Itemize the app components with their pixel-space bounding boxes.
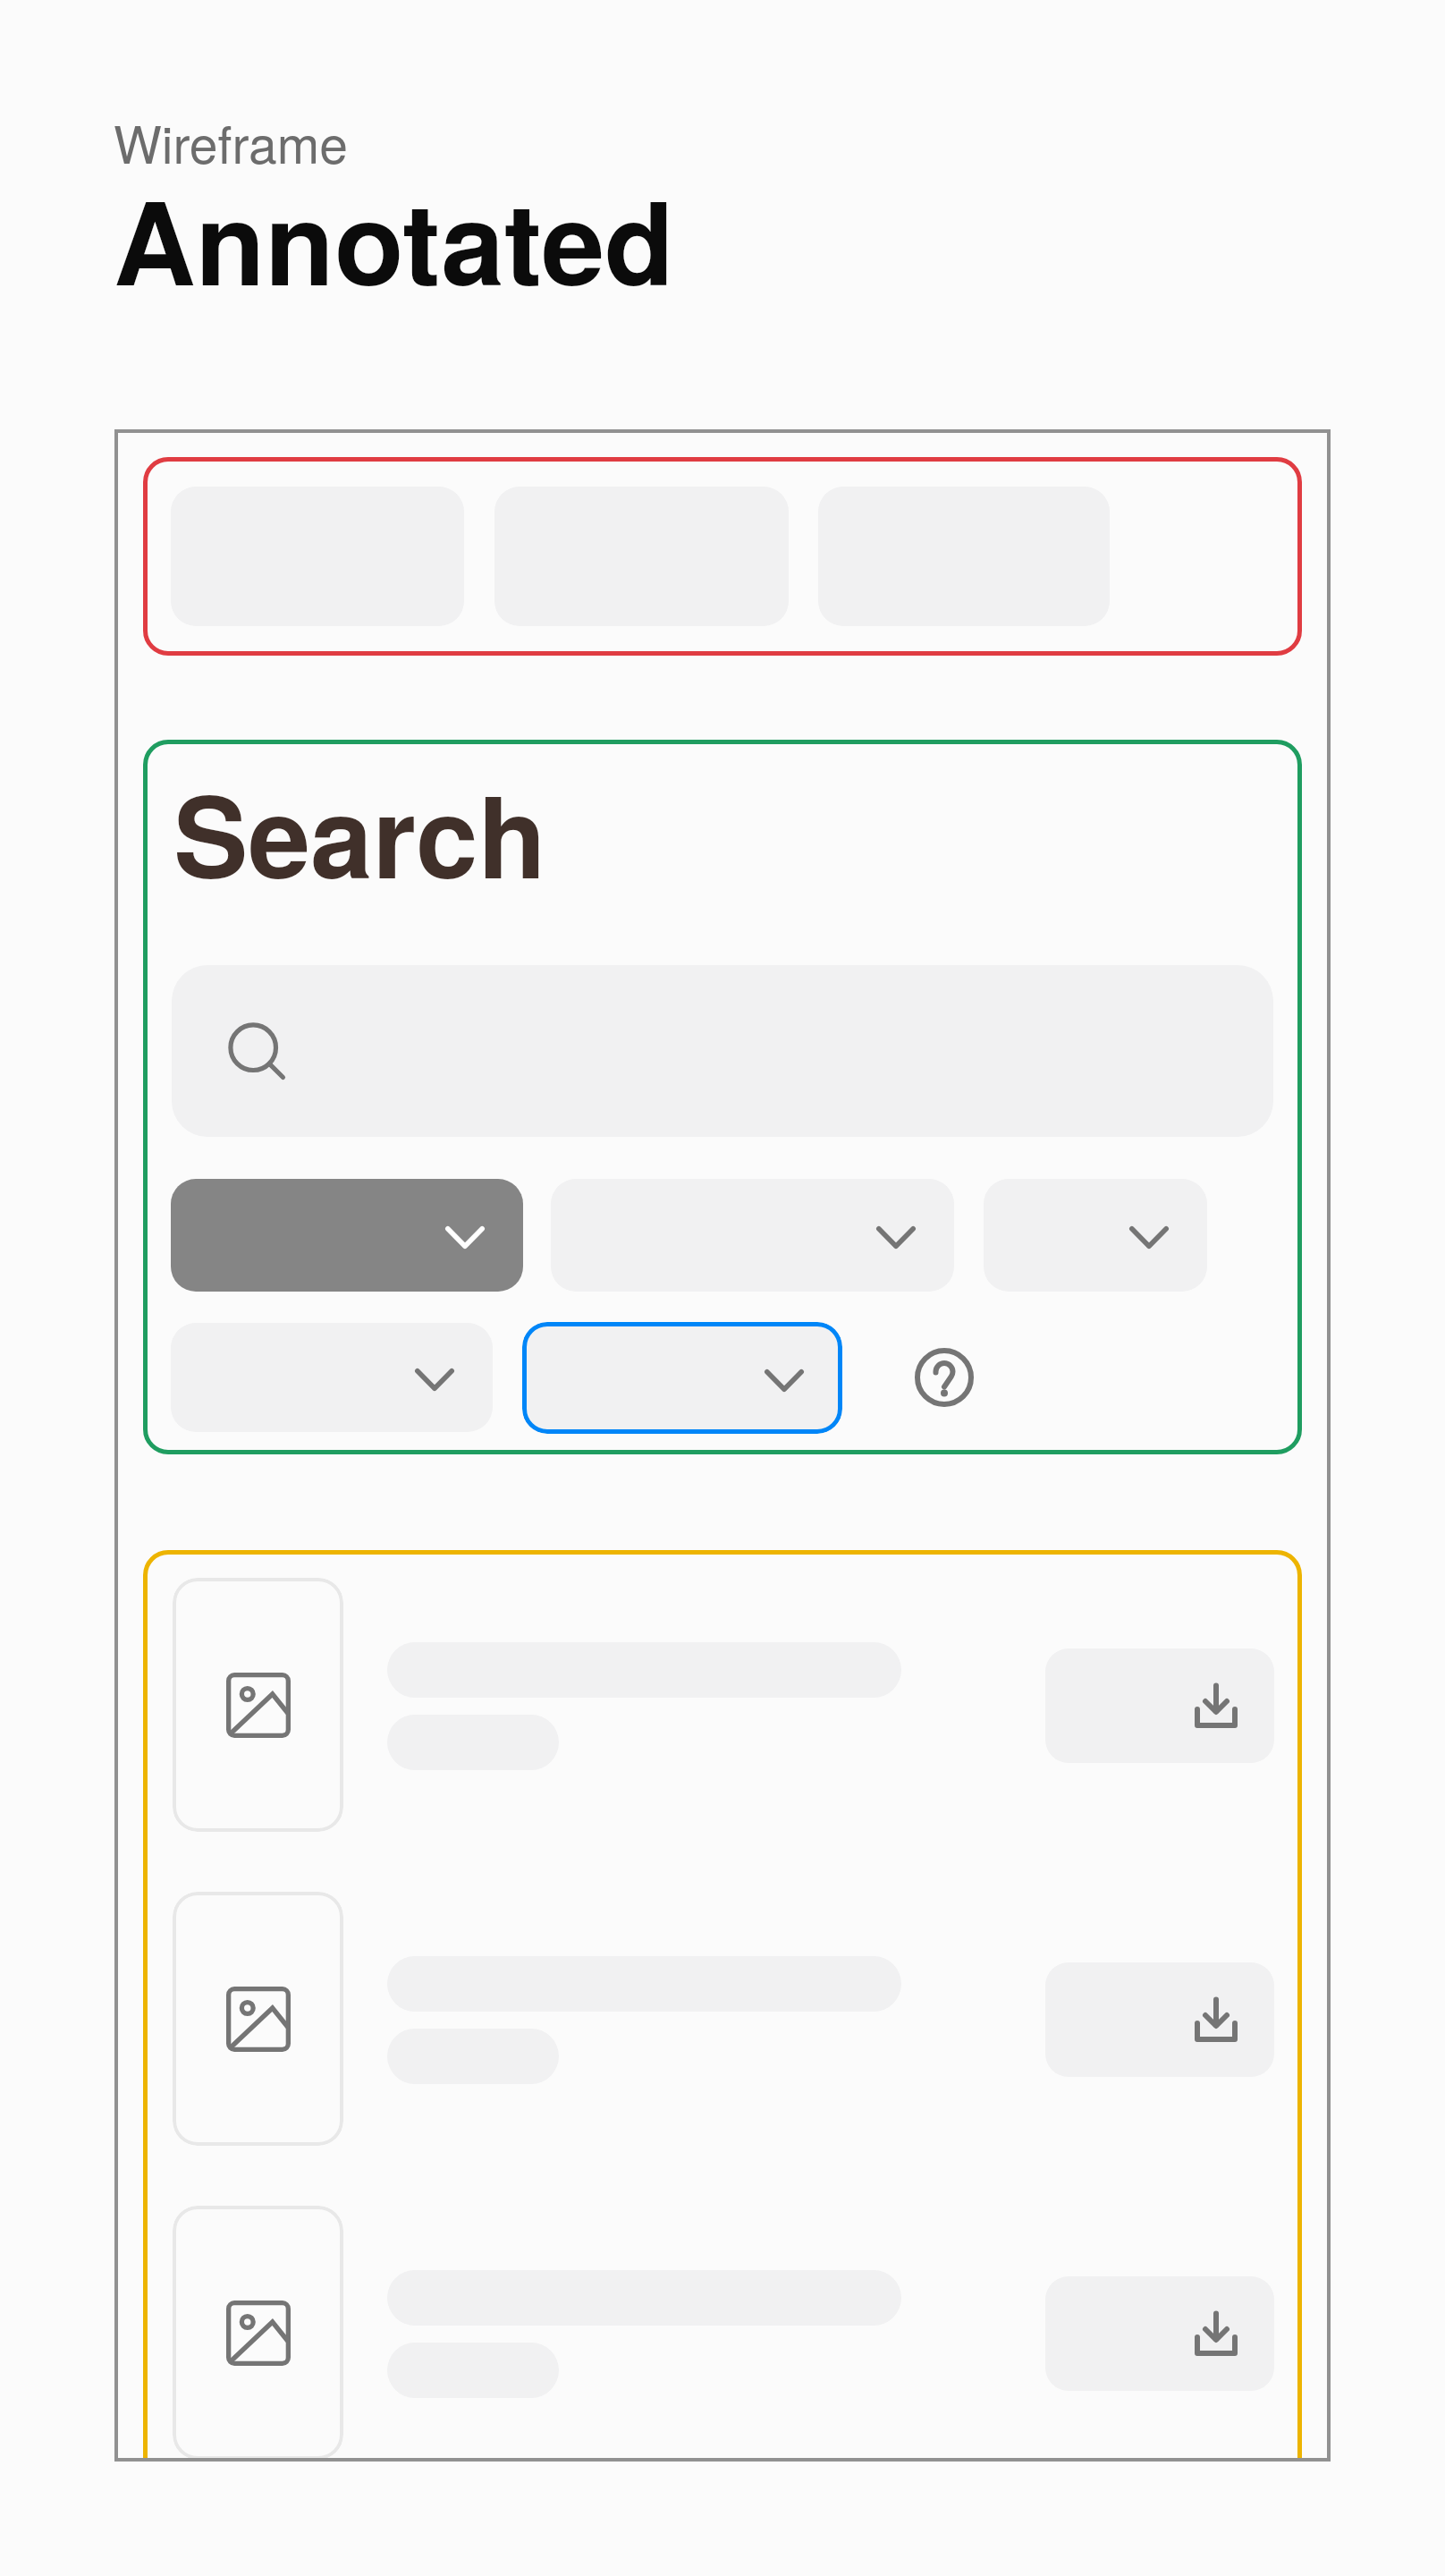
button[interactable]: List item bbox=[143, 1864, 1302, 2178]
button[interactable]: Download bbox=[1045, 2276, 1274, 2391]
button[interactable] bbox=[522, 1322, 842, 1434]
staticText: Search bbox=[173, 752, 546, 912]
button[interactable]: List item bbox=[143, 2178, 1302, 2462]
button[interactable] bbox=[551, 1179, 954, 1292]
button[interactable]: Help bbox=[915, 1348, 974, 1407]
button[interactable]: Image bbox=[173, 1578, 343, 1832]
button[interactable] bbox=[171, 1179, 523, 1292]
staticText: Annotated bbox=[114, 157, 674, 320]
button[interactable]: Download bbox=[1045, 1962, 1274, 2077]
button[interactable]: Image bbox=[173, 1892, 343, 2146]
button[interactable]: List item bbox=[143, 1550, 1302, 1864]
button[interactable] bbox=[171, 1323, 493, 1432]
button[interactable]: Search field bbox=[172, 965, 1273, 1137]
staticText: Wireframe bbox=[114, 106, 348, 179]
button[interactable]: Download bbox=[1045, 1648, 1274, 1763]
button[interactable] bbox=[984, 1179, 1207, 1292]
button[interactable]: Image bbox=[173, 2206, 343, 2460]
